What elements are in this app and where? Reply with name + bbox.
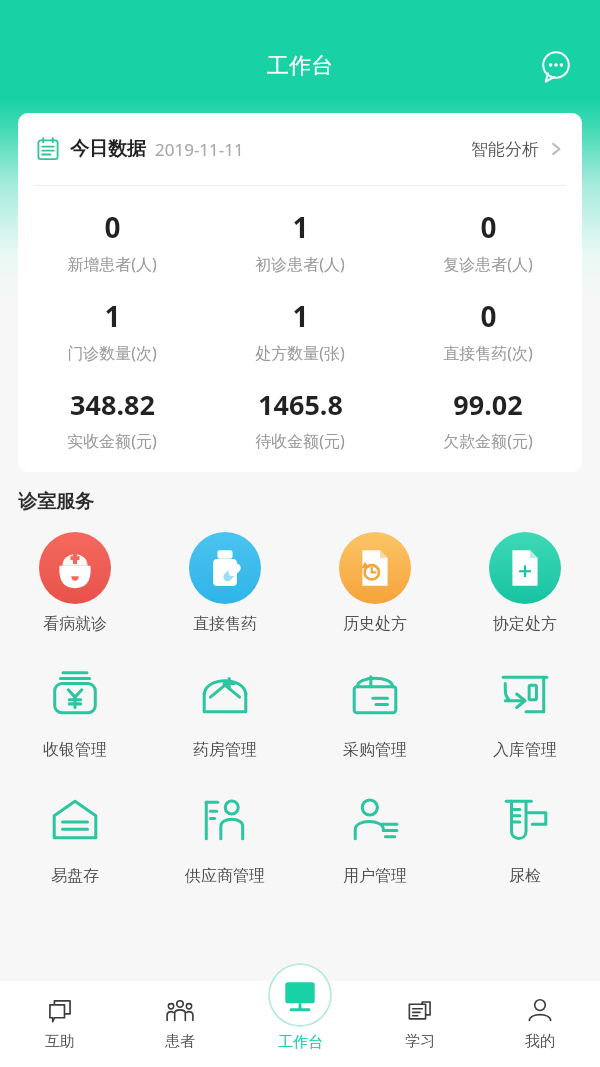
staticText: 我的: [525, 1032, 555, 1051]
button[interactable]: 药房管理: [150, 654, 300, 764]
staticText: 用户管理: [343, 866, 407, 886]
button[interactable]: 1: [206, 297, 394, 364]
button[interactable]: 99.02: [394, 386, 582, 452]
staticText: 工作台: [267, 52, 333, 80]
staticText: 工作台: [278, 1033, 323, 1052]
staticText: 初诊患者(人): [255, 253, 345, 275]
staticText: 门诊数量(次): [67, 342, 157, 364]
staticText: 协定处方: [493, 614, 557, 634]
staticText: 智能分析: [471, 139, 539, 160]
button[interactable]: 协定处方: [450, 528, 600, 638]
staticText: 收银管理: [43, 740, 107, 760]
button[interactable]: 入库管理: [450, 654, 600, 764]
button[interactable]: 1: [18, 297, 206, 364]
button[interactable]: 0: [18, 208, 206, 275]
button[interactable]: 0: [394, 297, 582, 364]
button[interactable]: 易盘存: [0, 780, 150, 890]
button[interactable]: 供应商管理: [150, 780, 300, 890]
button[interactable]: 历史处方: [300, 528, 450, 638]
staticText: 历史处方: [343, 614, 407, 634]
button[interactable]: 看病就诊: [0, 528, 150, 638]
staticText: 诊室服务: [18, 490, 94, 514]
button[interactable]: 我的: [480, 981, 600, 1067]
button[interactable]: 学习: [360, 981, 480, 1067]
button[interactable]: 1: [206, 208, 394, 275]
button[interactable]: 患者: [120, 981, 240, 1067]
staticText: 入库管理: [493, 740, 557, 760]
button[interactable]: 348.82: [18, 386, 206, 452]
button[interactable]: 直接售药: [150, 528, 300, 638]
staticText: 1: [292, 208, 309, 246]
staticText: 1: [104, 297, 121, 335]
staticText: 互助: [45, 1032, 75, 1051]
staticText: 直接售药: [193, 614, 257, 634]
staticText: 直接售药(次): [443, 342, 533, 364]
staticText: 欠款金额(元): [443, 430, 533, 452]
staticText: 1465.8: [258, 386, 343, 423]
staticText: 供应商管理: [185, 866, 265, 886]
staticText: 2019-11-11: [155, 138, 244, 161]
button[interactable]: 尿检: [450, 780, 600, 890]
staticText: 待收金额(元): [255, 430, 345, 452]
staticText: 99.02: [453, 386, 523, 423]
staticText: 易盘存: [51, 866, 99, 886]
button[interactable]: 1465.8: [206, 386, 394, 452]
staticText: 新增患者(人): [67, 253, 157, 275]
button[interactable]: 工作台: [240, 955, 360, 1067]
button[interactable]: 收银管理: [0, 654, 150, 764]
button[interactable]: 采购管理: [300, 654, 450, 764]
button[interactable]: 今日数据: [18, 113, 582, 185]
button[interactable]: 互助: [0, 981, 120, 1067]
staticText: 药房管理: [193, 740, 257, 760]
staticText: 患者: [165, 1032, 195, 1051]
button[interactable]: 用户管理: [300, 780, 450, 890]
staticText: 0: [104, 208, 121, 246]
staticText: 0: [480, 297, 497, 335]
button[interactable]: 0: [394, 208, 582, 275]
staticText: 采购管理: [343, 740, 407, 760]
staticText: 0: [480, 208, 497, 246]
staticText: 348.82: [70, 386, 155, 423]
staticText: 看病就诊: [43, 614, 107, 634]
staticText: 今日数据: [70, 137, 146, 161]
button[interactable]: Messages: [534, 44, 578, 88]
staticText: 尿检: [509, 866, 541, 886]
staticText: 1: [292, 297, 309, 335]
staticText: 处方数量(张): [255, 342, 345, 364]
staticText: 学习: [405, 1032, 435, 1051]
staticText: 实收金额(元): [67, 430, 157, 452]
staticText: 复诊患者(人): [443, 253, 533, 275]
